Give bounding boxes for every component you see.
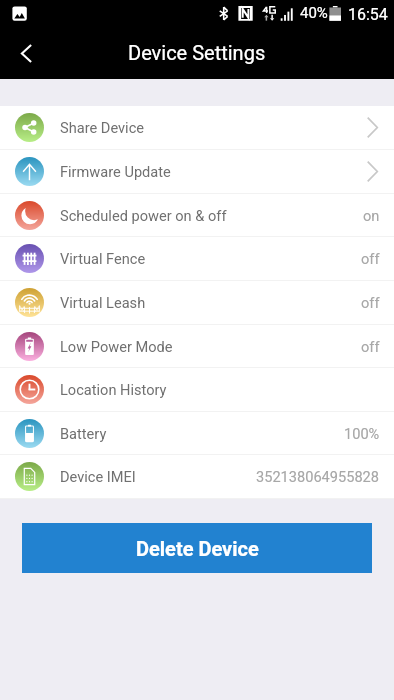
staticText: Device Settings — [128, 41, 266, 64]
button[interactable]: Delete Device — [22, 523, 372, 573]
staticText: 100% — [344, 425, 380, 442]
staticText: off — [361, 294, 380, 311]
staticText: off — [361, 250, 380, 267]
button[interactable]: Virtual Leash — [0, 281, 394, 325]
staticText: Device IMEI — [60, 468, 136, 485]
button[interactable]: Device IMEI — [0, 455, 394, 499]
button[interactable]: Battery — [0, 412, 394, 455]
staticText: Scheduled power on & off — [60, 207, 227, 224]
staticText: Share Device — [60, 119, 145, 136]
staticText: 352138064955828 — [256, 468, 380, 485]
button[interactable]: Low Power Mode — [0, 325, 394, 368]
staticText: Battery — [60, 425, 107, 442]
button[interactable]: Location History — [0, 368, 394, 412]
staticText: Virtual Fence — [60, 250, 146, 267]
staticText: off — [361, 338, 380, 355]
staticText: Firmware Update — [60, 163, 171, 180]
staticText: Delete Device — [136, 537, 259, 560]
button[interactable]: Virtual Fence — [0, 237, 394, 281]
staticText: Low Power Mode — [60, 338, 173, 355]
staticText: Location History — [60, 381, 167, 398]
staticText: 16:54 — [348, 5, 388, 24]
button[interactable]: Back — [0, 23, 52, 79]
staticText: Virtual Leash — [60, 294, 146, 311]
staticText: on — [363, 207, 380, 224]
button[interactable]: Firmware Update — [0, 150, 394, 194]
button[interactable]: Share Device — [0, 106, 394, 150]
button[interactable]: Scheduled power on & off — [0, 194, 394, 237]
staticText: 40% — [300, 4, 328, 22]
